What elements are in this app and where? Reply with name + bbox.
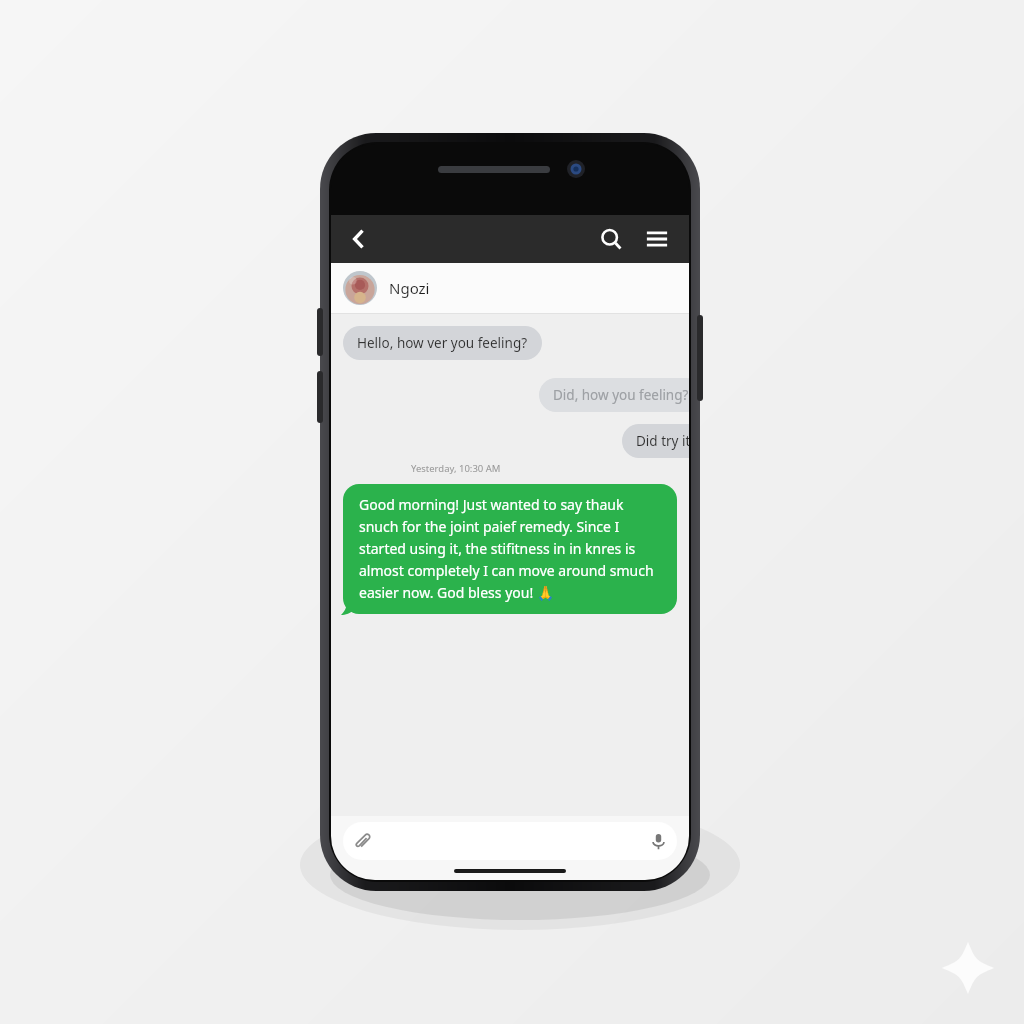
button[interactable]: Good morning! Just wanted to say thauk s…	[343, 484, 677, 614]
button[interactable]: Back	[337, 217, 381, 261]
staticText: Hello, how ver you feeling?	[357, 334, 528, 352]
button[interactable]: Did, how you feeling?	[539, 378, 689, 412]
button[interactable]: Ngozi	[331, 263, 689, 313]
staticText: Good morning! Just wanted to say thauk s…	[359, 495, 661, 603]
button[interactable]: Attach file	[343, 822, 381, 860]
button[interactable]: Search	[589, 217, 633, 261]
button[interactable]: Voice message	[639, 822, 677, 860]
button[interactable]: Hello, how ver you feeling?	[343, 326, 542, 360]
button[interactable]: Did try it	[622, 424, 689, 458]
staticText: Did try it	[636, 432, 689, 450]
staticText: Did, how you feeling?	[553, 386, 689, 404]
staticText: Yesterday, 10:30 AM	[411, 462, 501, 475]
button[interactable]: Menu	[635, 217, 679, 261]
staticText: Ngozi	[389, 278, 430, 298]
button[interactable]: Attach file	[343, 822, 677, 860]
